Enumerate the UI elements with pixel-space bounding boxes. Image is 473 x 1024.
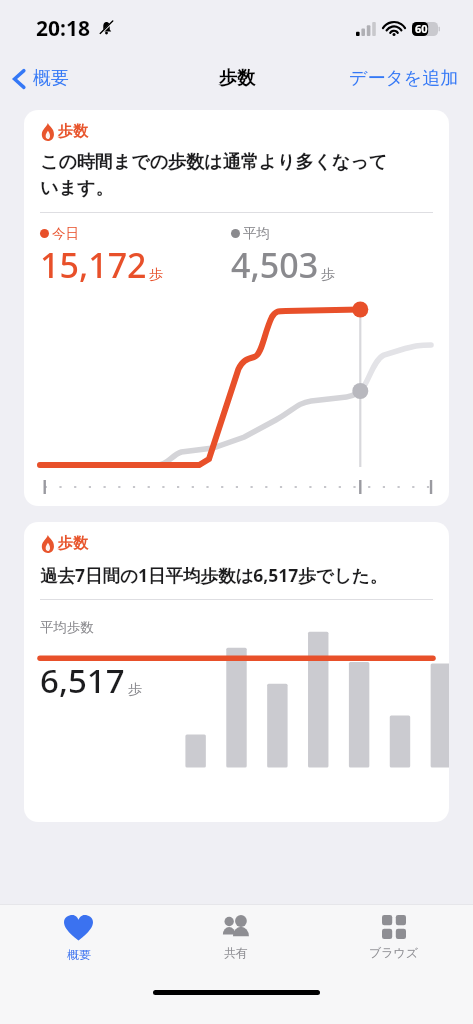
staticText: 歩数 bbox=[58, 122, 88, 141]
staticText: 今日 bbox=[52, 225, 79, 242]
staticText: 60 bbox=[415, 21, 428, 36]
staticText: データを追加 bbox=[349, 67, 459, 90]
staticText: 歩 bbox=[149, 266, 163, 284]
staticText: 15,172 bbox=[40, 242, 147, 288]
staticText: 歩数 bbox=[219, 67, 255, 90]
staticText: 6,517 bbox=[40, 658, 125, 703]
staticText: 平均歩数 bbox=[40, 619, 94, 636]
button[interactable]: 概要 bbox=[0, 905, 157, 962]
button[interactable]: 歩数 bbox=[24, 522, 449, 822]
staticText: 歩 bbox=[321, 266, 335, 284]
staticText: 概要 bbox=[33, 67, 69, 90]
staticText: 平均 bbox=[243, 225, 270, 242]
staticText: 過去7日間の1日平均歩数は6,517歩でした。 bbox=[40, 563, 388, 587]
staticText: 歩 bbox=[128, 681, 142, 699]
button[interactable]: 概要 bbox=[0, 61, 79, 96]
other: ブラウズ bbox=[382, 915, 406, 939]
button[interactable]: ブラウズ bbox=[315, 905, 473, 960]
staticText: 歩数 bbox=[58, 534, 88, 553]
staticText: 4,503 bbox=[231, 242, 319, 288]
button[interactable]: データを追加 bbox=[335, 61, 473, 96]
staticText: この時間までの歩数は通常より多くなって います。 bbox=[40, 151, 388, 199]
other: 概要 bbox=[64, 915, 93, 941]
staticText: ブラウズ bbox=[369, 945, 419, 960]
button[interactable]: 歩数 bbox=[24, 110, 449, 506]
staticText: 20:18 bbox=[36, 14, 90, 43]
staticText: 共有 bbox=[224, 945, 248, 960]
button[interactable]: 共有 bbox=[157, 905, 315, 960]
staticText: 概要 bbox=[67, 947, 91, 962]
other: 共有 bbox=[217, 915, 255, 939]
